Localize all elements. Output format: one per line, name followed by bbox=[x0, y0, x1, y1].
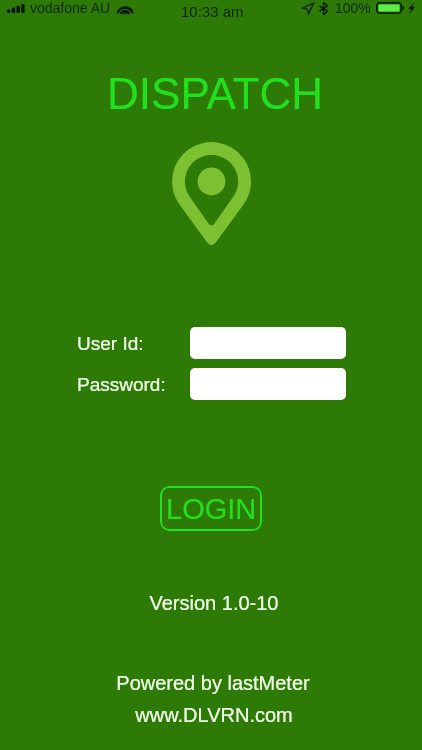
button[interactable]: User Id: bbox=[190, 327, 346, 359]
staticText: Version 1.0-10 bbox=[3, 592, 422, 614]
staticText: 10:33 am bbox=[181, 3, 244, 20]
staticText: Powered by lastMeter bbox=[2, 672, 422, 694]
staticText: User Id: bbox=[77, 333, 144, 354]
button[interactable]: LOGIN bbox=[160, 486, 262, 531]
button[interactable]: Password: bbox=[190, 368, 346, 400]
staticText: Password: bbox=[77, 374, 166, 395]
staticText: 100% bbox=[335, 0, 371, 16]
staticText: DISPATCH bbox=[4, 69, 422, 118]
staticText: LOGIN bbox=[166, 493, 257, 525]
staticText: www.DLVRN.com bbox=[3, 704, 422, 726]
staticText: vodafone AU bbox=[30, 0, 111, 16]
